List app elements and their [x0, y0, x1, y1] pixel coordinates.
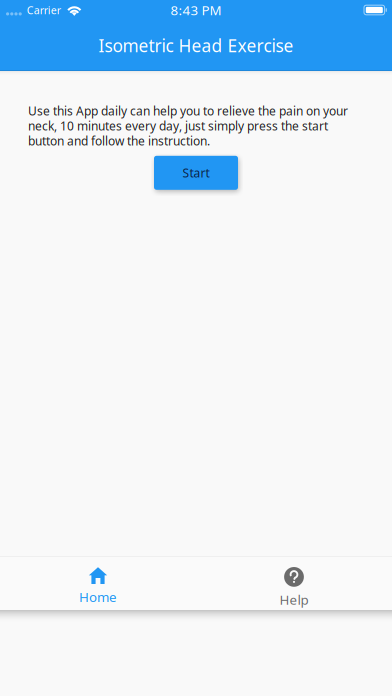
button[interactable]: Help	[196, 556, 392, 610]
staticText: Home	[79, 588, 117, 606]
staticText: Start	[182, 165, 209, 181]
staticText: Use this App daily can help you to relie…	[28, 103, 348, 149]
staticText: 8:43 PM	[170, 1, 221, 19]
staticText: Help	[279, 591, 308, 608]
staticText: Isometric Head Exercise	[98, 34, 293, 57]
button[interactable]: Start	[154, 156, 238, 190]
button[interactable]: Home	[0, 556, 196, 610]
staticText: Carrier	[27, 3, 61, 17]
